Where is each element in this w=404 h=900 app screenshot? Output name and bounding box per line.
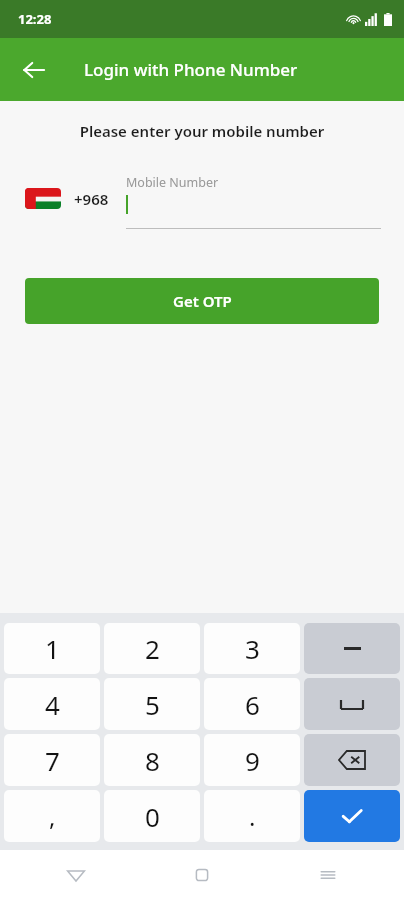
button[interactable]: Get OTP bbox=[25, 278, 379, 324]
button[interactable]: 4 bbox=[4, 678, 100, 730]
staticText: 5 bbox=[145, 687, 160, 722]
button[interactable]: Minus bbox=[304, 623, 400, 674]
staticText: Mobile Number bbox=[126, 174, 219, 191]
button[interactable]: 6 bbox=[204, 678, 300, 730]
staticText: 7 bbox=[45, 743, 60, 778]
staticText: 1 bbox=[45, 631, 60, 666]
staticText: 8 bbox=[145, 743, 160, 778]
button[interactable]: 7 bbox=[4, 734, 100, 786]
button[interactable]: Back bbox=[56, 855, 96, 895]
staticText: . bbox=[249, 800, 256, 833]
staticText: 4 bbox=[45, 687, 60, 722]
button[interactable]: 3 bbox=[204, 623, 300, 674]
button[interactable]: Enter bbox=[304, 790, 400, 842]
staticText: 9 bbox=[245, 743, 260, 778]
staticText: 2 bbox=[145, 631, 160, 666]
button[interactable]: Delete bbox=[304, 734, 400, 786]
button[interactable]: 5 bbox=[104, 678, 200, 730]
button[interactable]: 8 bbox=[104, 734, 200, 786]
button[interactable]: Recents bbox=[308, 855, 348, 895]
staticText: 12:28 bbox=[18, 10, 52, 28]
staticText: Get OTP bbox=[173, 291, 232, 311]
staticText: Please enter your mobile number bbox=[0, 121, 404, 141]
staticText: 0 bbox=[145, 799, 160, 834]
staticText: Login with Phone Number bbox=[84, 58, 298, 81]
staticText: , bbox=[49, 800, 56, 833]
staticText: +968 bbox=[74, 189, 109, 209]
button[interactable]: Mobile Number bbox=[126, 174, 381, 229]
staticText: 3 bbox=[245, 631, 260, 666]
button[interactable]: 2 bbox=[104, 623, 200, 674]
button[interactable]: 0 bbox=[104, 790, 200, 842]
button[interactable]: Space bbox=[304, 678, 400, 730]
button[interactable] bbox=[25, 188, 61, 209]
button[interactable]: 1 bbox=[4, 623, 100, 674]
button[interactable]: 9 bbox=[204, 734, 300, 786]
button[interactable]: , bbox=[4, 790, 100, 842]
button[interactable]: Back bbox=[12, 48, 56, 92]
button[interactable]: Home bbox=[182, 855, 222, 895]
staticText: 6 bbox=[245, 687, 260, 722]
button[interactable]: . bbox=[204, 790, 300, 842]
